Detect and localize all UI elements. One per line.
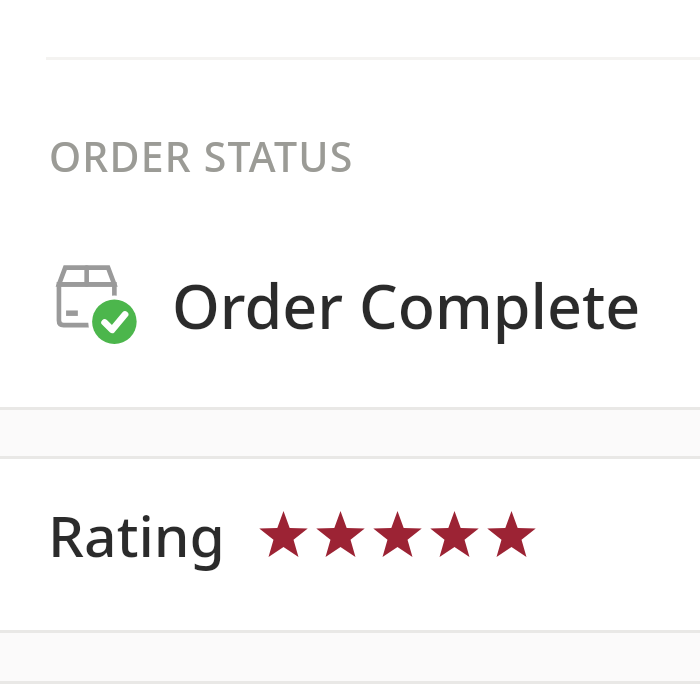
staticText: Rating	[48, 496, 225, 574]
button[interactable]: Order complete	[0, 250, 700, 360]
staticText: ORDER STATUS	[49, 128, 354, 184]
staticText: Order Complete	[172, 264, 641, 347]
other: Order complete	[56, 263, 140, 347]
button[interactable]: Rating	[0, 480, 700, 590]
